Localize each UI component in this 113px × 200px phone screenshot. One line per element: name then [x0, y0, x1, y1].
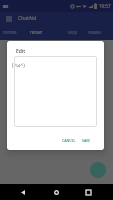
button[interactable]: Add	[90, 162, 106, 178]
button[interactable]: Recents	[82, 186, 95, 199]
staticText: (^ω^)	[12, 62, 25, 69]
staticText: TEXTART	[30, 31, 43, 35]
staticText: CANCEL	[62, 138, 76, 143]
staticText: SAVE	[82, 138, 91, 143]
staticText: 19:57	[99, 3, 111, 9]
staticText: Edit	[16, 48, 26, 55]
button[interactable]: Menu	[3, 13, 14, 24]
button[interactable]: STICKERS	[0, 25, 23, 40]
staticText: ChatAid	[18, 15, 37, 22]
button[interactable]: TEXTART	[23, 25, 49, 40]
button[interactable]: Home	[50, 186, 63, 199]
button[interactable]: EMOJI	[59, 25, 85, 40]
button[interactable]: Back	[16, 186, 29, 199]
button[interactable]: PHRASES	[81, 25, 107, 40]
staticText: PHRASES	[88, 31, 101, 35]
staticText: STICKERS	[3, 31, 17, 35]
button[interactable]: CANCEL	[58, 134, 80, 147]
staticText: EMOJI	[68, 31, 77, 35]
button[interactable]: SAVE	[77, 134, 95, 147]
